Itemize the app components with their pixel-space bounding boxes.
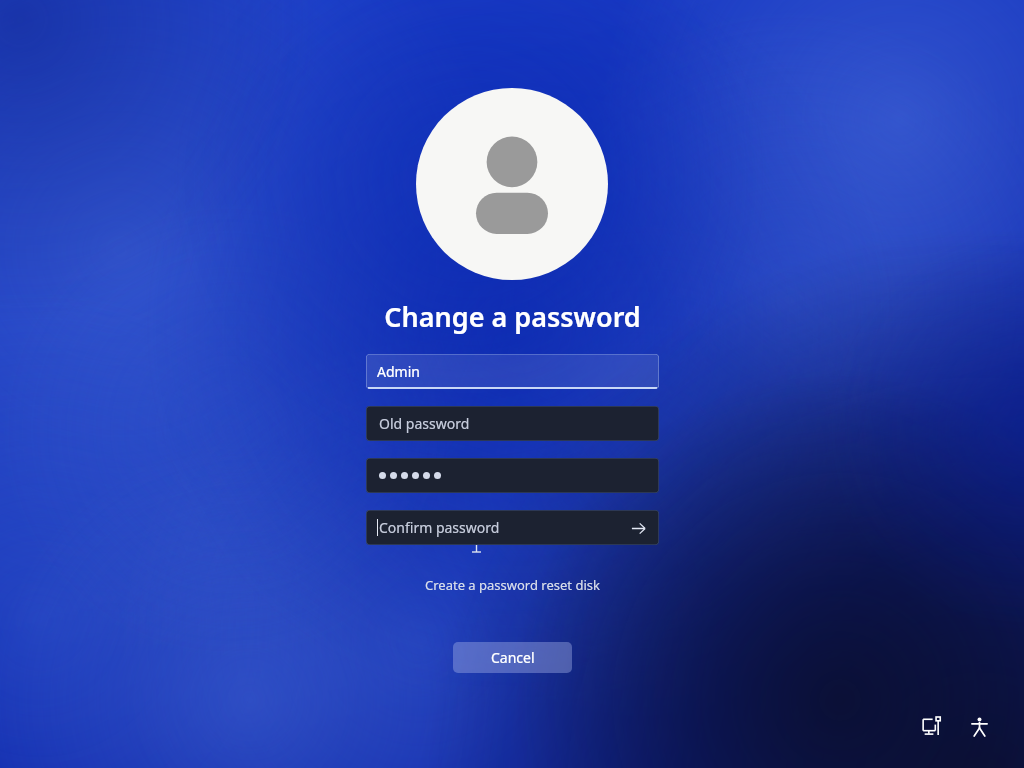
staticText: Cancel: [491, 648, 535, 667]
button[interactable]: Cancel: [453, 642, 572, 673]
other: User account picture: [416, 88, 608, 280]
staticText: Old password: [379, 414, 470, 433]
staticText: Confirm password: [379, 518, 500, 537]
button[interactable]: Old password: [366, 406, 659, 441]
button[interactable]: Submit: [627, 517, 649, 539]
staticText: Admin: [377, 362, 420, 381]
button[interactable]: Confirm password: [366, 510, 659, 545]
button[interactable]: Network: [916, 711, 946, 741]
staticText: Create a password reset disk: [425, 576, 600, 594]
button[interactable]: Admin: [366, 354, 659, 389]
staticText: Change a password: [384, 298, 641, 335]
button[interactable]: [366, 458, 659, 493]
button[interactable]: Create a password reset disk: [419, 574, 606, 596]
button[interactable]: Ease of access: [964, 711, 994, 741]
